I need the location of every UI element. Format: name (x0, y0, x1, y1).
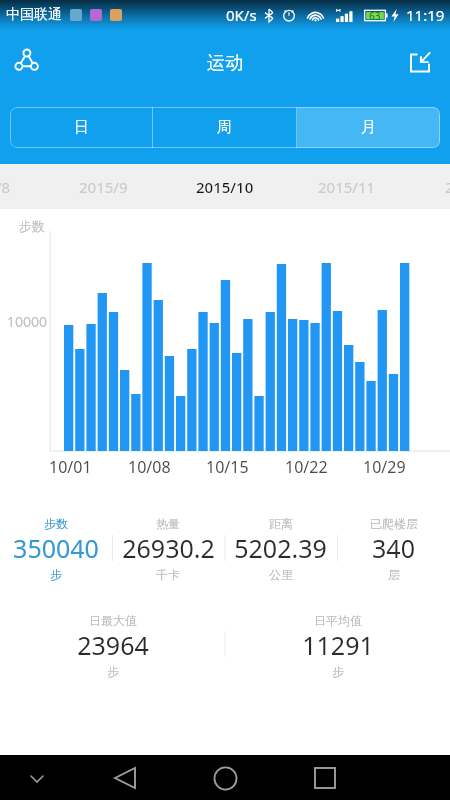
staticText: 日 (74, 118, 89, 137)
staticText: 350040 (13, 531, 99, 565)
staticText: 10000 (7, 312, 48, 331)
button[interactable]: 已爬楼层 (337, 505, 450, 593)
staticText: 中国联通 (6, 6, 62, 24)
staticText: 日平均值 (314, 613, 362, 628)
staticText: 10/29 (363, 456, 406, 478)
staticText: 63 (369, 9, 381, 22)
staticText: 340 (372, 531, 415, 565)
staticText: 23964 (77, 628, 149, 662)
staticText: 10/01 (49, 456, 92, 478)
staticText: 周 (217, 118, 232, 137)
button[interactable]: Hide navigation bar (17, 758, 57, 798)
staticText: 26930.2 (122, 531, 215, 565)
button[interactable]: Back (105, 758, 145, 798)
staticText: 10/22 (285, 456, 328, 478)
staticText: 步 (107, 664, 119, 679)
button[interactable]: 日最大值 (0, 602, 225, 688)
button[interactable]: 月 (297, 107, 440, 148)
staticText: 已爬楼层 (370, 516, 418, 531)
staticText: 5202.39 (234, 531, 327, 565)
staticText: 步 (50, 567, 62, 582)
staticText: 运动 (207, 52, 243, 75)
staticText: 11291 (302, 628, 374, 662)
button[interactable]: Share (0, 39, 48, 87)
staticText: 距离 (269, 516, 293, 531)
staticText: 公里 (269, 567, 293, 582)
staticText: 步数 (19, 218, 45, 234)
staticText: 0K/s (226, 5, 257, 25)
staticText: 月 (361, 118, 376, 137)
staticText: 千卡 (156, 567, 180, 582)
button[interactable]: Home (205, 758, 245, 798)
staticText: 步数 (44, 516, 68, 531)
button[interactable]: 距离 (224, 505, 337, 593)
staticText: 步 (332, 664, 344, 679)
button[interactable]: 日 (10, 107, 152, 148)
staticText: 10/15 (206, 456, 249, 478)
button[interactable]: 热量 (112, 505, 224, 593)
button[interactable]: 2 (445, 177, 450, 197)
button[interactable]: 日平均值 (225, 602, 450, 688)
staticText: 热量 (156, 516, 180, 531)
button[interactable]: Recent apps (305, 758, 345, 798)
button[interactable]: 步数 (0, 505, 112, 593)
staticText: 10/08 (128, 456, 171, 478)
button[interactable]: 2015/9 (79, 177, 128, 197)
button[interactable]: 2015/11 (318, 177, 376, 197)
button[interactable]: /8 (0, 177, 11, 197)
button[interactable]: Import data (396, 39, 444, 87)
staticText: 11:19 (406, 5, 445, 25)
staticText: 日最大值 (89, 613, 137, 628)
button[interactable]: 2015/10 (196, 177, 254, 197)
staticText: 层 (388, 567, 400, 582)
button[interactable]: 周 (153, 107, 296, 148)
